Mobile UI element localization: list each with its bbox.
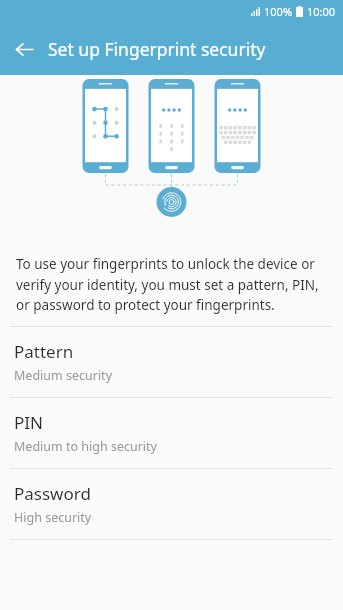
staticText: PIN bbox=[14, 411, 43, 434]
staticText: High security bbox=[14, 509, 92, 526]
button[interactable]: Password bbox=[0, 469, 343, 539]
staticText: 10:00 bbox=[307, 4, 336, 19]
button[interactable]: PIN bbox=[0, 398, 343, 468]
button[interactable]: Pattern bbox=[0, 327, 343, 397]
staticText: Medium security bbox=[14, 367, 113, 384]
staticText: Medium to high security bbox=[14, 438, 157, 455]
staticText: Set up Fingerprint security bbox=[48, 37, 266, 61]
button[interactable]: Navigate up bbox=[0, 25, 48, 73]
staticText: Password bbox=[14, 482, 91, 505]
staticText: To use your fingerprints to unlock the d… bbox=[16, 255, 327, 314]
staticText: Pattern bbox=[14, 340, 74, 363]
staticText: 100% bbox=[264, 4, 293, 19]
